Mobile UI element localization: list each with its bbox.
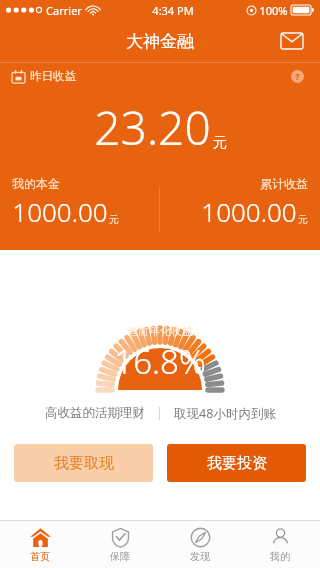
staticText: 元 (298, 213, 308, 226)
staticText: 我的 (270, 550, 290, 563)
staticText: 100% (259, 3, 288, 18)
staticText: ? (295, 70, 300, 82)
staticText: 累计收益 (260, 176, 308, 191)
staticText: 首页 (30, 550, 50, 563)
staticText: 发现 (190, 550, 210, 563)
button[interactable]: 发现 (160, 521, 240, 568)
button[interactable]: 我的 (240, 521, 320, 568)
staticText: 元 (109, 213, 119, 226)
staticText: 取现48小时内到账 (174, 405, 276, 422)
button[interactable]: Help (286, 65, 308, 87)
staticText: 4:34 PM (152, 3, 194, 18)
staticText: 23.20 (94, 96, 211, 159)
button[interactable]: 我要取现 (14, 444, 153, 482)
staticText: 我要投资 (207, 454, 267, 473)
staticText: 1000.00 (12, 194, 108, 229)
staticText: 我要取现 (54, 454, 114, 473)
staticText: 高收益的活期理财 (45, 405, 145, 421)
button[interactable]: 我要投资 (167, 444, 306, 482)
button[interactable]: 保障 (80, 521, 160, 568)
staticText: Carrier (46, 3, 82, 18)
staticText: 元 (213, 134, 227, 152)
staticText: 1000.00 (201, 194, 297, 229)
staticText: 昨日收益 (30, 69, 76, 83)
staticText: 我的本金 (12, 176, 60, 191)
staticText: 大神金融 (126, 31, 194, 52)
button[interactable]: Messages (275, 24, 309, 58)
staticText: 当前年化收益 (127, 324, 193, 338)
staticText: 保障 (110, 550, 130, 563)
staticText: 16.8% (114, 339, 206, 384)
button[interactable]: 首页 (0, 521, 80, 568)
